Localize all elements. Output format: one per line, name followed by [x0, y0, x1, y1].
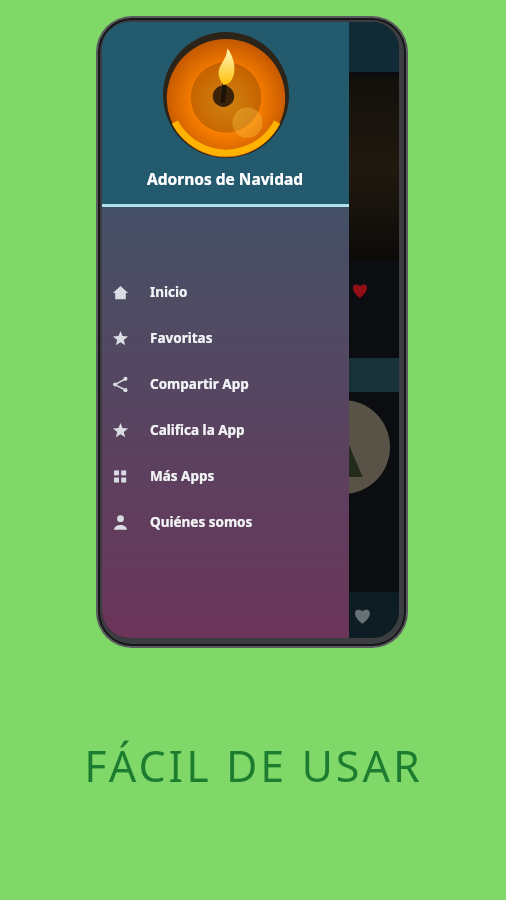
staticText: FÁCIL DE USAR [84, 736, 423, 795]
button[interactable]: Ver Todas [270, 358, 399, 392]
staticText: Adornos de Navidad [147, 168, 304, 189]
button[interactable]: Califica la App [102, 407, 349, 453]
button[interactable]: Más Apps [102, 453, 349, 499]
button[interactable]: Compartir App [102, 361, 349, 407]
staticText: Favoritas [150, 329, 213, 347]
staticText: Compartir App [150, 375, 249, 393]
button[interactable]: Inicio [102, 269, 349, 315]
button[interactable]: Favorito [348, 278, 372, 302]
staticText: Quiénes somos [150, 513, 253, 531]
button[interactable]: Quiénes somos [102, 499, 349, 545]
button[interactable]: Favoritas [345, 598, 379, 632]
staticText: Más Apps [150, 467, 215, 485]
staticText: Califica la App [150, 421, 245, 439]
button[interactable]: Favoritas [102, 315, 349, 361]
staticText: Inicio [150, 283, 188, 301]
